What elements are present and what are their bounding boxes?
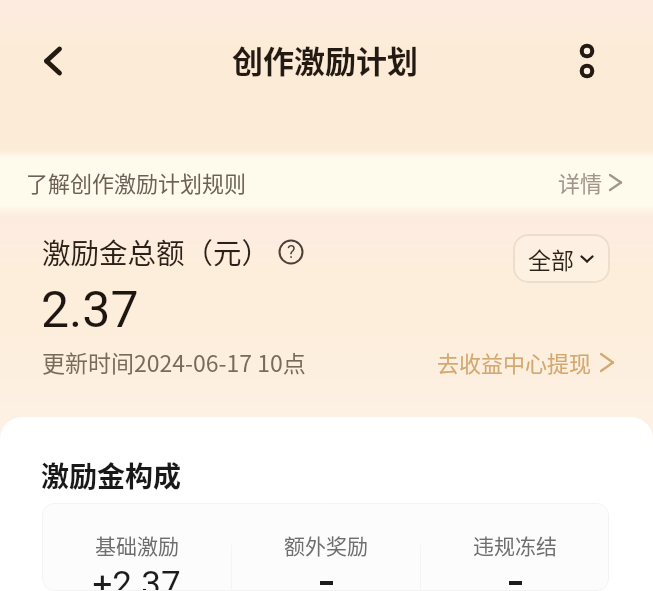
button[interactable]: 全部	[513, 234, 610, 283]
staticText: 额外奖励	[284, 530, 368, 560]
button[interactable]: 去收益中心提现	[437, 346, 616, 378]
button[interactable]: 额外奖励	[232, 503, 420, 591]
staticText: 详情	[558, 166, 603, 198]
button[interactable]: Help	[276, 237, 306, 267]
staticText: 2.37	[41, 281, 139, 340]
button[interactable]: 基础激励	[42, 503, 231, 591]
button[interactable]: 违规冻结	[421, 503, 609, 591]
staticText: ?	[287, 241, 296, 262]
staticText: 激励金总额（元）	[42, 231, 271, 272]
staticText: 创作激励计划	[232, 37, 418, 82]
staticText: 更新时间2024-06-17 10点	[42, 345, 306, 378]
staticText: 了解创作激励计划规则	[26, 166, 247, 198]
button[interactable]: Back	[29, 37, 77, 85]
button[interactable]: 了解创作激励计划规则	[0, 154, 653, 210]
staticText: 全部	[528, 242, 574, 275]
staticText: 基础激励	[95, 530, 179, 560]
button[interactable]: More options	[563, 37, 611, 85]
staticText: 违规冻结	[473, 530, 557, 560]
staticText: 去收益中心提现	[437, 346, 592, 378]
staticText: +2.37	[92, 564, 181, 591]
staticText: 激励金构成	[41, 455, 182, 496]
